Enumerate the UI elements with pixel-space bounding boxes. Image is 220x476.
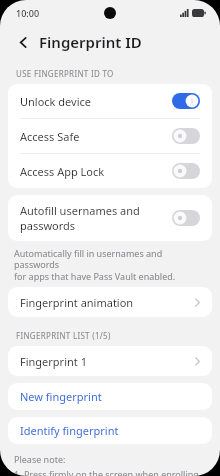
staticText: Automatically fill in usernames and pass… [14, 247, 206, 283]
staticText: 10:00 [16, 7, 40, 19]
staticText: Identify fingerprint [20, 423, 119, 438]
button[interactable]: Fingerprint 1 [8, 346, 212, 376]
button[interactable]: Unlock device [8, 84, 212, 118]
staticText: Please note: [14, 453, 66, 465]
staticText: New fingerprint [20, 389, 102, 404]
staticText: USE FINGERPRINT ID TO [16, 68, 114, 79]
staticText: Fingerprint 1 [20, 354, 195, 369]
staticText: Fingerprint ID [39, 32, 142, 52]
staticText: 1. Press firmly on the screen when enrol… [14, 468, 206, 476]
button[interactable]: Access Safe [8, 119, 212, 153]
staticText: Unlock device [20, 94, 164, 109]
button[interactable]: Access App Lock [8, 154, 212, 188]
button[interactable]: Autofill usernames and passwords [8, 195, 212, 241]
staticText: FINGERPRINT LIST (1/5) [16, 330, 111, 341]
staticText: Access Safe [20, 129, 164, 144]
button[interactable]: New fingerprint [8, 383, 212, 410]
button[interactable]: Fingerprint animation [8, 287, 212, 317]
staticText: Access App Lock [20, 164, 164, 179]
button[interactable]: Identify fingerprint [8, 417, 212, 444]
button[interactable]: Back [12, 31, 34, 53]
staticText: Fingerprint animation [20, 295, 195, 310]
staticText: Autofill usernames and passwords [20, 203, 164, 233]
